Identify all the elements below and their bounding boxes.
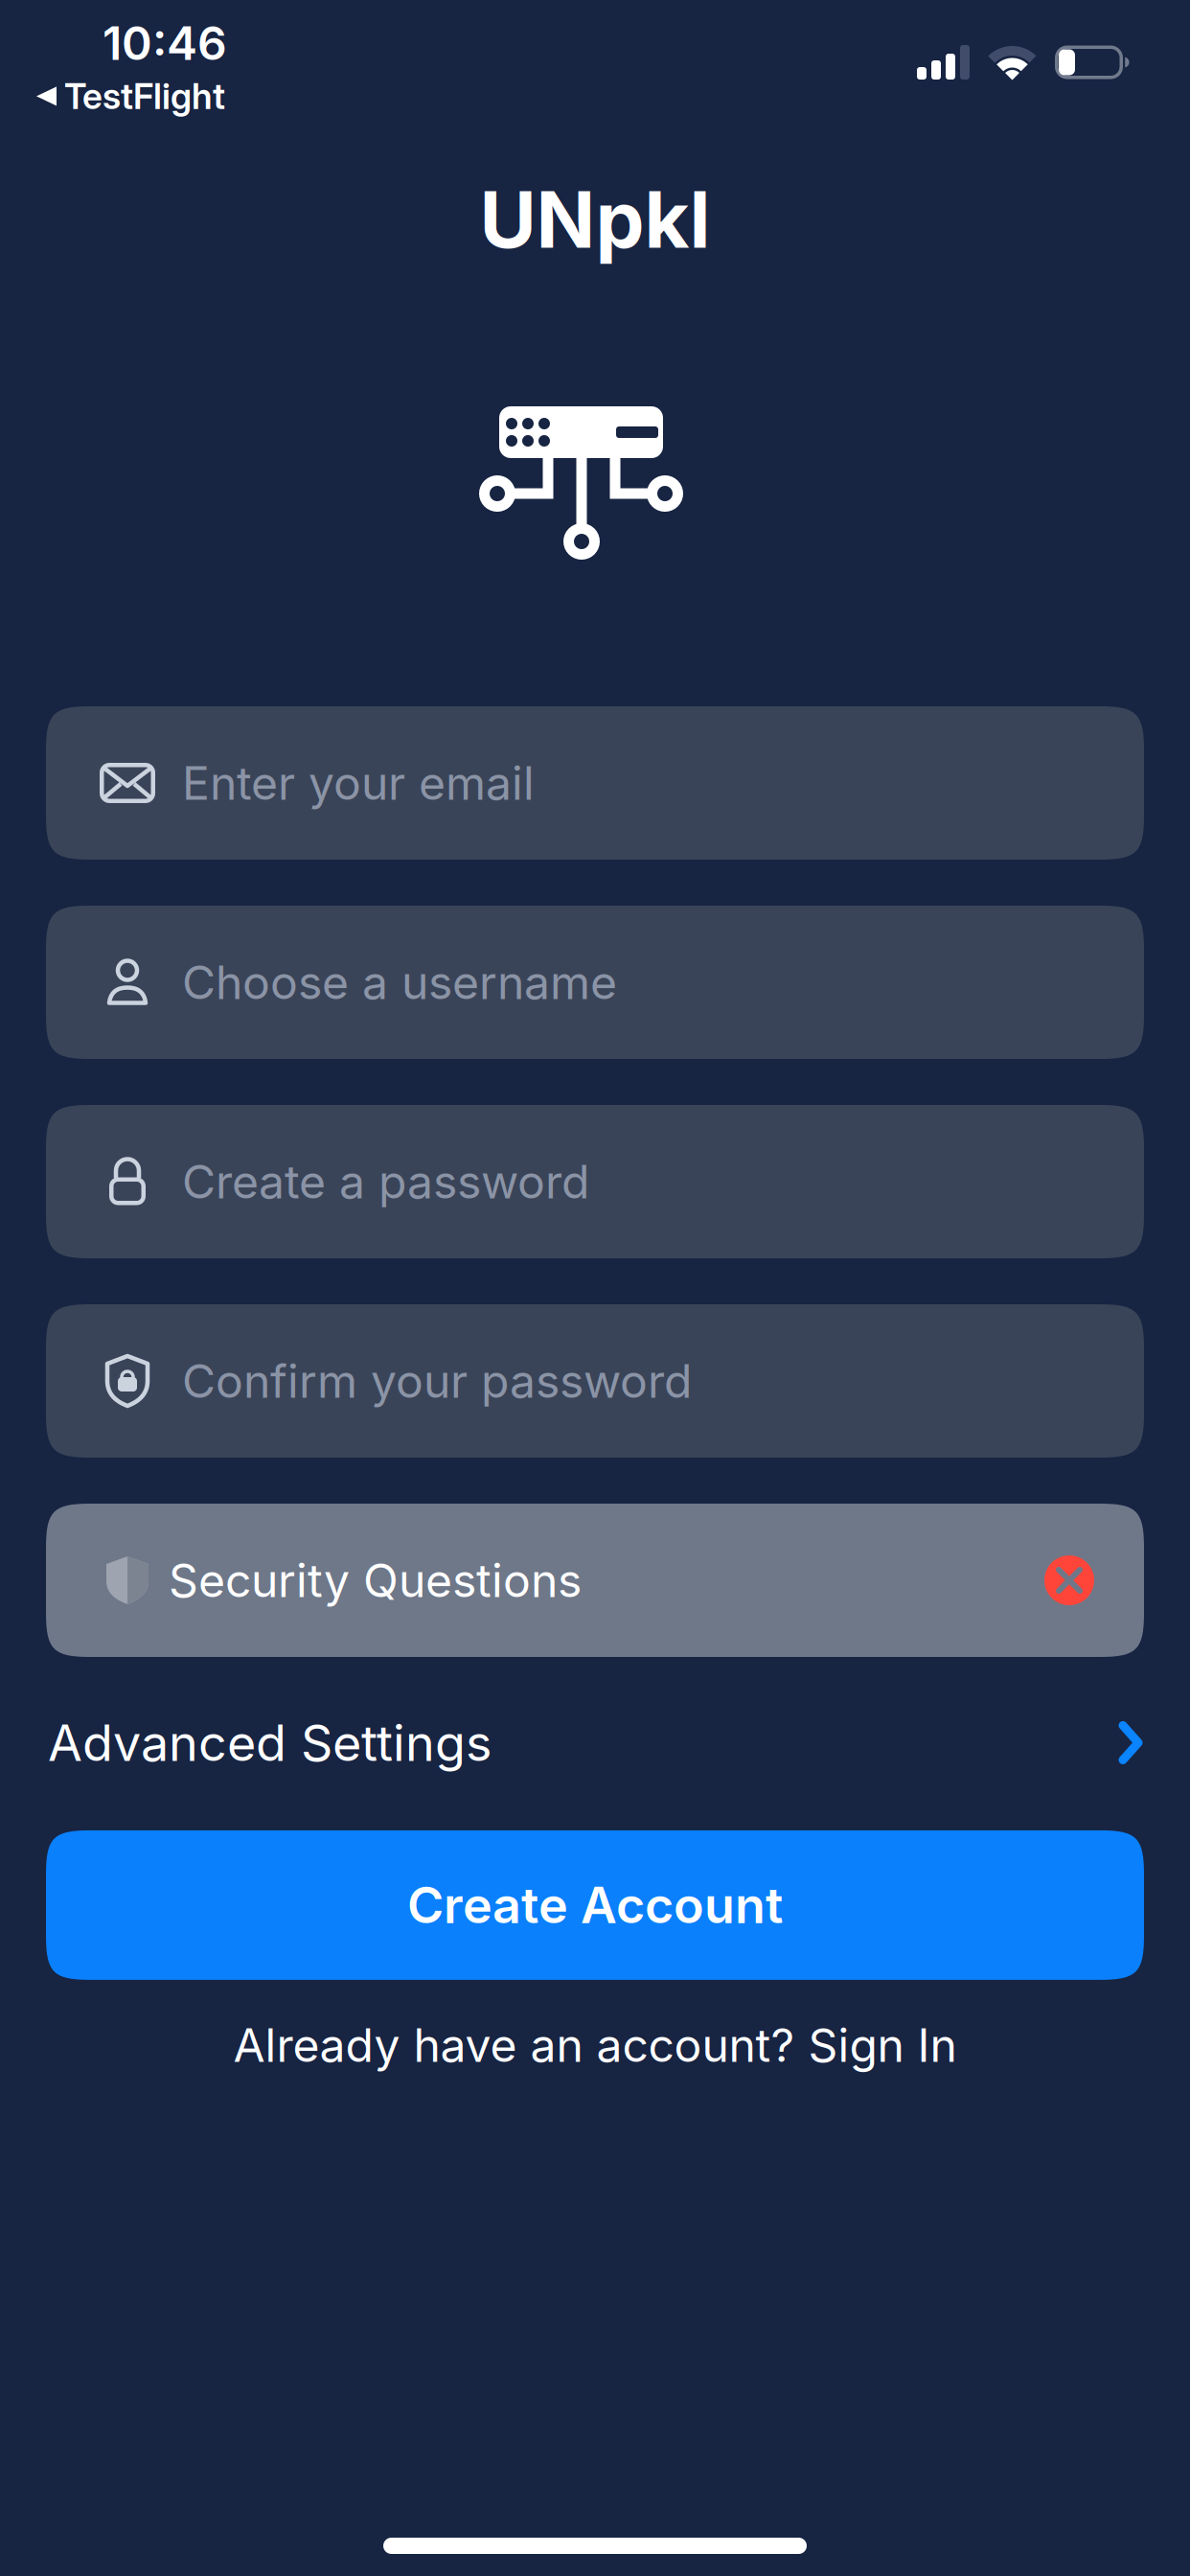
staticText: Confirm your password xyxy=(182,1353,692,1409)
staticText: TestFlight xyxy=(64,75,225,118)
staticText: Choose a username xyxy=(182,954,617,1010)
staticText: UNpkl xyxy=(480,172,710,266)
staticText: 10:46 xyxy=(103,15,227,71)
staticText: Enter your email xyxy=(182,755,535,811)
button[interactable]: Create Account xyxy=(46,1830,1144,1980)
staticText: Advanced Settings xyxy=(48,1713,492,1773)
button[interactable]: Choose a username xyxy=(46,906,1144,1059)
staticText: Create Account xyxy=(407,1875,783,1935)
button[interactable]: Back to TestFlight xyxy=(36,75,225,118)
button[interactable]: Enter your email xyxy=(46,706,1144,860)
button[interactable]: Advanced Settings xyxy=(0,1713,1190,1773)
staticText: Already have an account? Sign In xyxy=(233,2017,957,2073)
staticText: Create a password xyxy=(182,1154,589,1210)
staticText: Security Questions xyxy=(169,1552,582,1608)
button[interactable]: Confirm your password xyxy=(46,1304,1144,1458)
button[interactable]: Already have an account? Sign In xyxy=(233,2017,957,2073)
button[interactable]: Security Questions xyxy=(46,1504,1144,1657)
button[interactable]: Create a password xyxy=(46,1105,1144,1258)
